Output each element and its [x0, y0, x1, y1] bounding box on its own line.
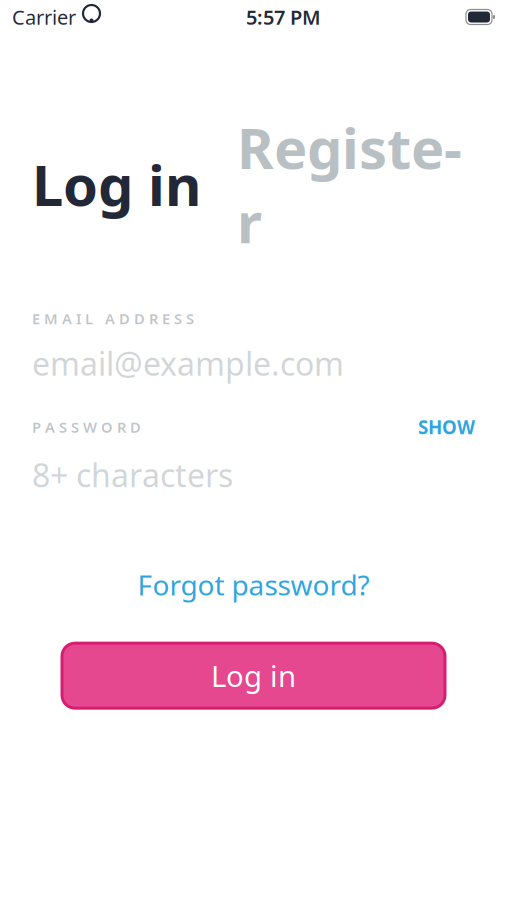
button[interactable]: SHOW	[418, 415, 475, 439]
staticText: Log in	[211, 656, 296, 695]
staticText: 5:57 PM	[246, 4, 321, 30]
staticText: Log in	[32, 147, 201, 222]
button[interactable]: Log in	[62, 643, 445, 708]
staticText: E M A I L A D D R E S S	[32, 309, 194, 328]
button[interactable]: Log in	[32, 147, 201, 222]
staticText: SHOW	[418, 415, 475, 439]
staticText: Carrier	[12, 4, 76, 30]
button[interactable]: Forgot password?	[0, 558, 507, 611]
staticText: email@example.com	[32, 342, 344, 385]
staticText: 8+ characters	[32, 453, 233, 496]
staticText: P A S S W O R D	[32, 417, 141, 437]
staticText: Register	[237, 110, 462, 259]
button[interactable]: Register	[237, 110, 462, 259]
staticText: Forgot password?	[137, 566, 369, 603]
